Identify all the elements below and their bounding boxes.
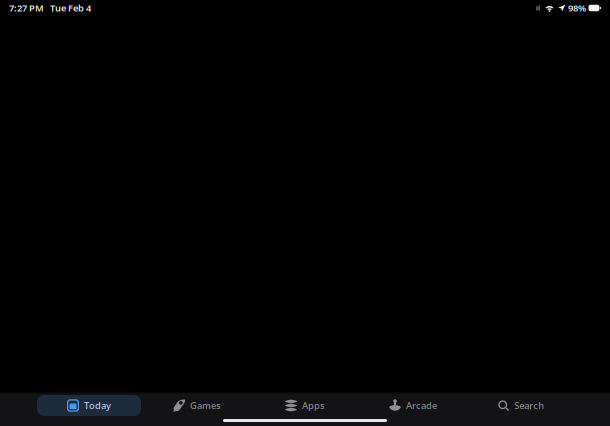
- staticText: Arcade: [406, 399, 437, 412]
- button[interactable]: Apps: [251, 395, 359, 416]
- button[interactable]: Arcade: [359, 395, 467, 416]
- button[interactable]: Games: [143, 395, 251, 416]
- staticText: Apps: [302, 399, 325, 412]
- button[interactable]: Search: [467, 395, 575, 416]
- button[interactable]: Today: [35, 395, 143, 416]
- staticText: Games: [190, 399, 221, 412]
- staticText: 98%: [568, 2, 586, 14]
- staticText: Today: [84, 399, 111, 412]
- staticText: Tue Feb 4: [44, 2, 91, 14]
- staticText: Search: [514, 399, 544, 412]
- staticText: 7:27 PM: [9, 2, 44, 14]
